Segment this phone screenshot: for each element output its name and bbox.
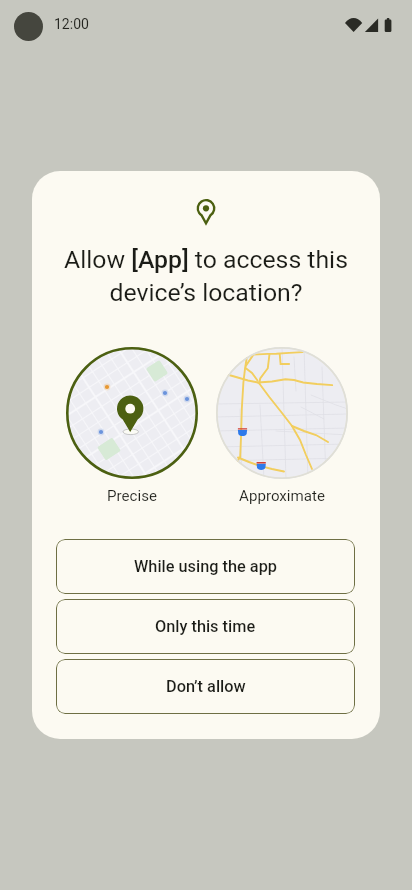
button[interactable]: Account — [14, 12, 43, 41]
staticText: Allow [App] to access this device’s loca… — [40, 245, 372, 307]
staticText: Precise — [66, 487, 198, 505]
staticText: Approximate — [216, 487, 348, 505]
button[interactable]: Don’t allow — [56, 659, 355, 714]
staticText: While using the app — [134, 557, 277, 576]
staticText: 12:00 — [54, 16, 89, 32]
button[interactable]: Approximate — [216, 347, 348, 479]
button[interactable]: While using the app — [56, 539, 355, 594]
other: Status icons — [345, 18, 392, 32]
button[interactable]: Only this time — [56, 599, 355, 654]
button[interactable]: Precise — [66, 347, 198, 479]
staticText: Only this time — [155, 617, 256, 636]
staticText: Don’t allow — [166, 677, 246, 696]
